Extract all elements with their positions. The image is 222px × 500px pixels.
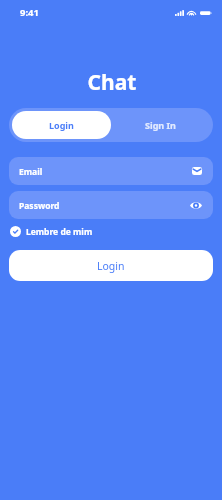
staticText: Email [19,166,43,178]
button[interactable]: Login [9,250,213,281]
staticText: Login [49,119,74,131]
other: Battery [200,10,212,16]
button[interactable]: Password [9,191,213,219]
button[interactable]: Lembre de mim [10,226,93,237]
staticText: Chat [1,68,222,97]
button[interactable]: Login [12,111,111,139]
button[interactable]: Email [9,157,213,185]
other: Cellular signal [175,10,184,16]
other: Email [192,167,202,175]
staticText: Password [19,200,60,212]
button[interactable]: Sign In [111,111,210,139]
staticText: Login [97,259,125,273]
staticText: Lembre de mim [26,226,93,237]
staticText: 9:41 [20,6,39,19]
other: Wifi [187,9,196,16]
other: Show password [190,201,202,210]
staticText: Sign In [145,119,176,131]
